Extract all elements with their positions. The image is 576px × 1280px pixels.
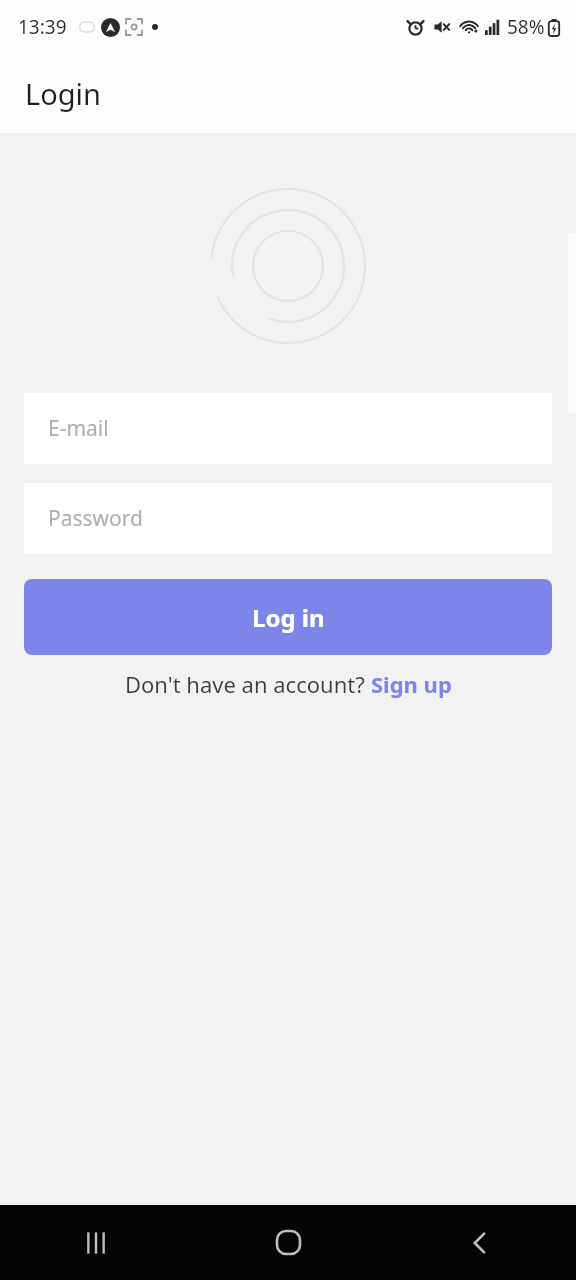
button[interactable]: Log in bbox=[24, 579, 552, 655]
staticText: Password bbox=[48, 504, 143, 533]
staticText: Sign up bbox=[371, 669, 452, 699]
button[interactable]: Home bbox=[192, 1205, 384, 1280]
staticText: 58% bbox=[507, 14, 545, 40]
button[interactable]: E-mail bbox=[24, 393, 552, 464]
button[interactable]: Password bbox=[24, 483, 552, 554]
staticText: Login bbox=[25, 74, 101, 113]
staticText: 13:39 bbox=[18, 14, 67, 40]
staticText: Log in bbox=[252, 601, 325, 634]
button[interactable]: Back bbox=[384, 1205, 576, 1280]
staticText: Don't have an account? bbox=[125, 669, 371, 699]
staticText: E-mail bbox=[48, 414, 109, 443]
button[interactable]: Sign up bbox=[371, 669, 452, 699]
button[interactable]: Recent apps bbox=[0, 1205, 192, 1280]
